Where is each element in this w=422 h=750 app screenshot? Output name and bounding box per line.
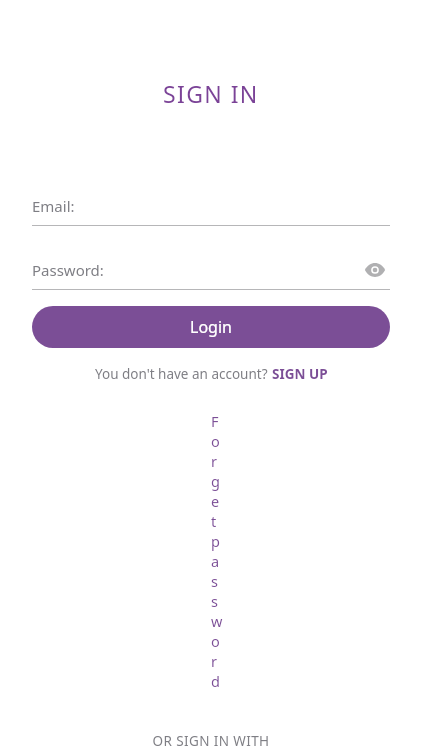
staticText: SIGN IN xyxy=(163,78,259,109)
button[interactable]: SIGN UP xyxy=(272,365,328,383)
staticText: Email: xyxy=(32,196,75,216)
staticText: Password: xyxy=(32,260,104,280)
button[interactable]: Password: xyxy=(32,251,390,289)
staticText: OR SIGN IN WITH xyxy=(152,732,270,750)
button[interactable]: Forget password xyxy=(205,408,217,694)
button[interactable]: Show password xyxy=(360,255,390,285)
staticText: You don't have an account? xyxy=(95,365,272,383)
button[interactable]: Login xyxy=(32,306,390,348)
button[interactable]: Email: xyxy=(32,187,390,225)
staticText: Login xyxy=(190,316,232,338)
staticText: SIGN UP xyxy=(272,365,328,383)
